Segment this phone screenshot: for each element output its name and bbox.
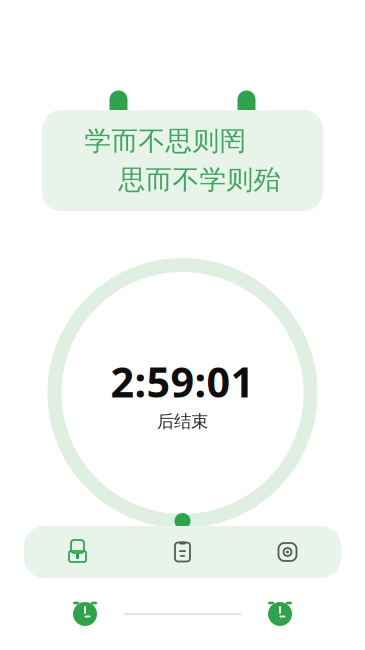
button[interactable]: 闹钟 — [265, 599, 295, 629]
staticText: 后结束 — [157, 411, 208, 432]
staticText: 学而不思则罔 — [84, 125, 246, 157]
button[interactable]: 首页 — [25, 526, 130, 578]
button[interactable]: 设置 — [235, 526, 340, 578]
staticText: 2:59:01 — [110, 354, 254, 409]
button[interactable]: 闹钟 — [70, 599, 100, 629]
staticText: 思而不学则殆 — [118, 163, 280, 196]
button[interactable]: 任务清单 — [130, 526, 235, 578]
